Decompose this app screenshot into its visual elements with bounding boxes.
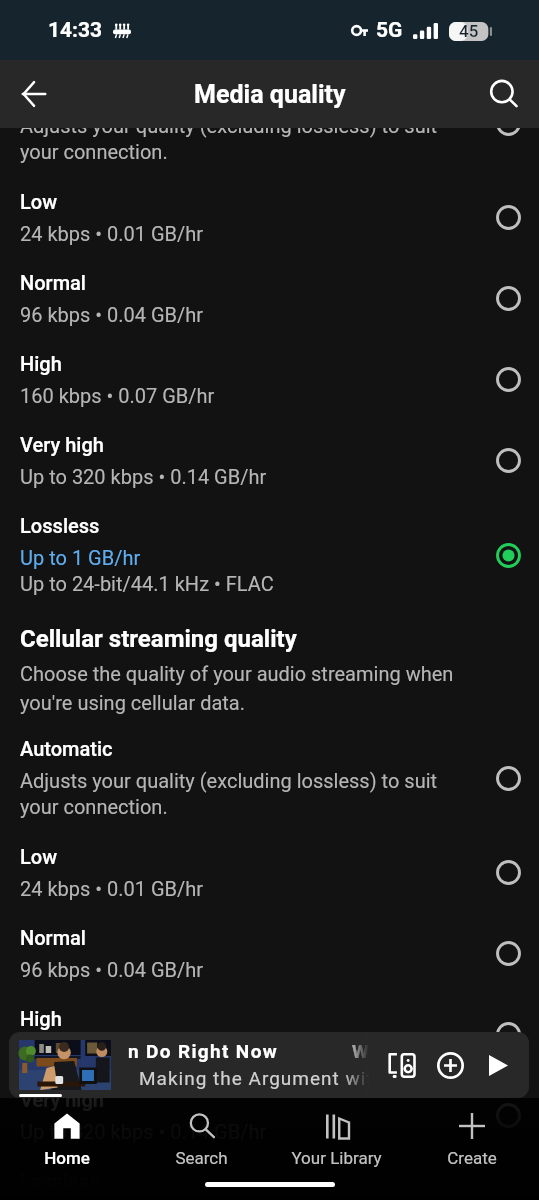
button[interactable]: Add to Your Library <box>426 1041 474 1089</box>
staticText: Normal <box>20 271 86 294</box>
staticText: Media quality <box>194 80 346 109</box>
staticText: n Do Right Now <box>128 1040 279 1062</box>
button[interactable]: Very high <box>0 1076 539 1157</box>
staticText: Normal <box>20 926 86 949</box>
staticText: Cellular streaming quality <box>20 625 297 653</box>
staticText: Wi <box>352 1040 369 1062</box>
button[interactable]: Low <box>0 833 539 914</box>
staticText: Adjusts your quality (excluding lossless… <box>20 769 476 819</box>
button[interactable]: Lossless <box>0 502 539 610</box>
staticText: 14:33 <box>48 18 103 43</box>
staticText: 96 kbps • 0.04 GB/hr <box>20 958 204 981</box>
staticText: Search <box>175 1148 228 1168</box>
staticText: Up to 1 GB/hr Up to 24-bit/44.1 kHz • FL… <box>20 546 274 596</box>
button[interactable]: Create <box>404 1098 539 1176</box>
staticText: Choose the quality of your audio streami… <box>20 662 471 715</box>
button[interactable]: Normal <box>0 259 539 340</box>
button[interactable]: n Do Right Now <box>9 1032 529 1098</box>
staticText: 160 kbps • 0.07 GB/hr <box>20 384 215 407</box>
staticText: Lossless <box>20 514 100 537</box>
button[interactable]: High <box>0 995 539 1076</box>
button[interactable]: Normal <box>0 914 539 995</box>
staticText: Very high <box>20 433 104 456</box>
button[interactable]: Search <box>477 68 529 120</box>
button[interactable]: Play <box>474 1041 522 1089</box>
staticText: High <box>20 352 62 375</box>
button[interactable]: Very high <box>0 421 539 502</box>
button[interactable]: Search <box>134 1098 269 1176</box>
staticText: Up to 320 kbps • 0.14 GB/hr <box>20 465 267 488</box>
staticText: Home <box>44 1148 90 1168</box>
staticText: 24 kbps • 0.01 GB/hr <box>20 877 204 900</box>
staticText: High <box>20 1007 62 1030</box>
staticText: Making the Argument with Mich <box>139 1067 369 1089</box>
staticText: Very high <box>20 1088 104 1111</box>
staticText: Automatic <box>20 82 113 105</box>
button[interactable]: Automatic <box>0 70 539 178</box>
button[interactable]: Home <box>0 1098 134 1176</box>
staticText: Your Library <box>291 1148 382 1168</box>
staticText: 45 <box>459 21 479 41</box>
button[interactable]: Lossless <box>0 1157 539 1200</box>
staticText: Low <box>20 845 58 868</box>
staticText: Adjusts your quality (excluding lossless… <box>20 114 476 164</box>
button[interactable]: Connect to a device <box>378 1041 426 1089</box>
button[interactable]: Your Library <box>269 1098 404 1176</box>
button[interactable]: Low <box>0 178 539 259</box>
staticText: 96 kbps • 0.04 GB/hr <box>20 303 204 326</box>
staticText: Low <box>20 190 58 213</box>
staticText: 24 kbps • 0.01 GB/hr <box>20 222 204 245</box>
staticText: 160 kbps • 0.07 GB/hr <box>20 1039 215 1062</box>
button[interactable]: High <box>0 340 539 421</box>
staticText: 5G <box>376 18 403 43</box>
staticText: Up to 320 kbps • 0.14 GB/hr <box>20 1120 267 1143</box>
button[interactable]: Automatic <box>0 725 539 833</box>
button[interactable]: Back <box>8 68 60 120</box>
staticText: Automatic <box>20 737 113 760</box>
staticText: Create <box>447 1148 497 1168</box>
